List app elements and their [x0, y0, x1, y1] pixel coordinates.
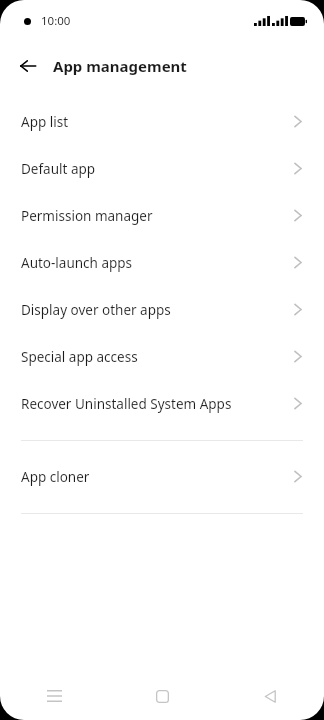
staticText: Display over other apps: [21, 301, 294, 319]
staticText: App cloner: [21, 468, 294, 486]
staticText: App management: [53, 56, 187, 76]
button[interactable]: Default app: [0, 145, 324, 192]
button[interactable]: App cloner: [0, 453, 324, 500]
staticText: Special app access: [21, 348, 294, 366]
staticText: 10:00: [41, 13, 71, 29]
button[interactable]: Auto-launch apps: [0, 239, 324, 286]
staticText: Default app: [21, 160, 294, 178]
button[interactable]: Home: [108, 672, 216, 720]
staticText: Auto-launch apps: [21, 254, 294, 272]
button[interactable]: App list: [0, 98, 324, 145]
button[interactable]: Display over other apps: [0, 286, 324, 333]
button[interactable]: Permission manager: [0, 192, 324, 239]
button[interactable]: Recover Uninstalled System Apps: [0, 380, 324, 427]
button[interactable]: Recent apps: [0, 672, 108, 720]
button[interactable]: Special app access: [0, 333, 324, 380]
staticText: Permission manager: [21, 207, 294, 225]
button[interactable]: Back: [14, 52, 42, 80]
button[interactable]: Back: [216, 672, 324, 720]
staticText: App list: [21, 113, 294, 131]
staticText: Recover Uninstalled System Apps: [21, 395, 294, 413]
